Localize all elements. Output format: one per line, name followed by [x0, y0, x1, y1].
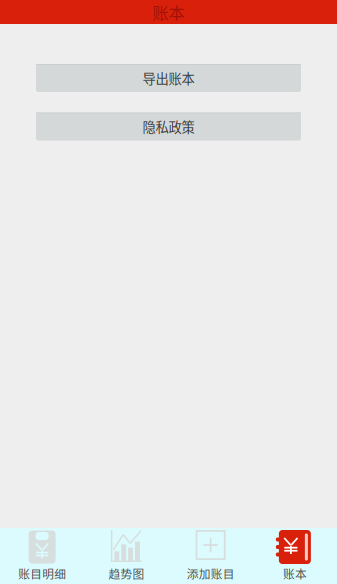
- staticText: 导出账本: [142, 68, 194, 88]
- staticText: 添加账目: [187, 565, 235, 582]
- staticText: 账本: [283, 565, 307, 582]
- staticText: 趋势图: [108, 565, 144, 582]
- button[interactable]: 添加账目: [168, 528, 253, 584]
- staticText: 隐私政策: [142, 117, 194, 136]
- staticText: 账目明细: [18, 565, 66, 582]
- button[interactable]: 账本: [253, 528, 337, 584]
- button[interactable]: 隐私政策: [36, 112, 301, 140]
- button[interactable]: 导出账本: [36, 64, 301, 92]
- staticText: 账本: [152, 0, 184, 24]
- button[interactable]: 趋势图: [84, 528, 168, 584]
- button[interactable]: 账目明细: [0, 528, 84, 584]
